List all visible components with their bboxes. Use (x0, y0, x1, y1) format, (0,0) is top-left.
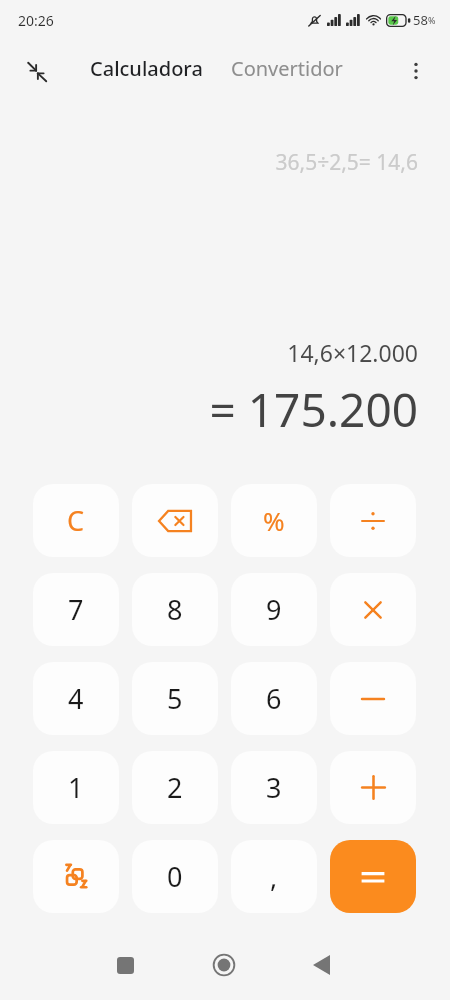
button[interactable]: 0 (132, 840, 218, 913)
staticText: = 175.200 (209, 378, 418, 441)
button[interactable]: 8 (132, 573, 218, 646)
staticText: 7 (68, 591, 84, 628)
button[interactable]: 7 (33, 573, 119, 646)
staticText: Convertidor (231, 55, 343, 82)
button[interactable]: Convertidor (227, 51, 347, 86)
staticText: 5 (167, 680, 183, 717)
button[interactable]: 4 (33, 662, 119, 735)
staticText: , (270, 858, 278, 895)
button[interactable]: C (33, 484, 119, 557)
staticText: 20:26 (18, 11, 54, 30)
staticText: 6 (266, 680, 282, 717)
staticText: 4 (68, 680, 84, 717)
staticText: % (428, 14, 436, 26)
button[interactable]: Divide (330, 484, 416, 557)
button[interactable]: 3 (231, 751, 317, 824)
button[interactable]: Subtract (330, 662, 416, 735)
button[interactable]: 2 (132, 751, 218, 824)
button[interactable]: Recents (100, 940, 150, 990)
staticText: Calculadora (90, 55, 203, 82)
button[interactable]: Back (296, 940, 346, 990)
staticText: C (67, 502, 85, 539)
button[interactable]: Scientific functions (33, 840, 119, 913)
staticText: 14,6×12.000 (287, 337, 418, 368)
button[interactable]: Calculadora (86, 51, 207, 86)
button[interactable]: Backspace (132, 484, 218, 557)
button[interactable]: Collapse (22, 57, 52, 87)
button[interactable]: 5 (132, 662, 218, 735)
staticText: 0 (167, 858, 183, 895)
button[interactable]: 9 (231, 573, 317, 646)
button[interactable]: , (231, 840, 317, 913)
staticText: 58 (413, 11, 428, 29)
button[interactable]: 1 (33, 751, 119, 824)
staticText: 1 (68, 769, 84, 806)
staticText: 36,5÷2,5= 14,6 (275, 148, 418, 177)
button[interactable]: Home (199, 940, 249, 990)
staticText: 3 (266, 769, 282, 806)
staticText: 9 (266, 591, 282, 628)
button[interactable]: Add (330, 751, 416, 824)
button[interactable]: Multiply (330, 573, 416, 646)
button[interactable]: % (231, 484, 317, 557)
button[interactable]: More options (400, 55, 432, 87)
button[interactable]: 6 (231, 662, 317, 735)
staticText: % (263, 503, 285, 538)
staticText: 2 (167, 769, 183, 806)
staticText: 8 (167, 591, 183, 628)
button[interactable]: Equals (330, 840, 416, 913)
